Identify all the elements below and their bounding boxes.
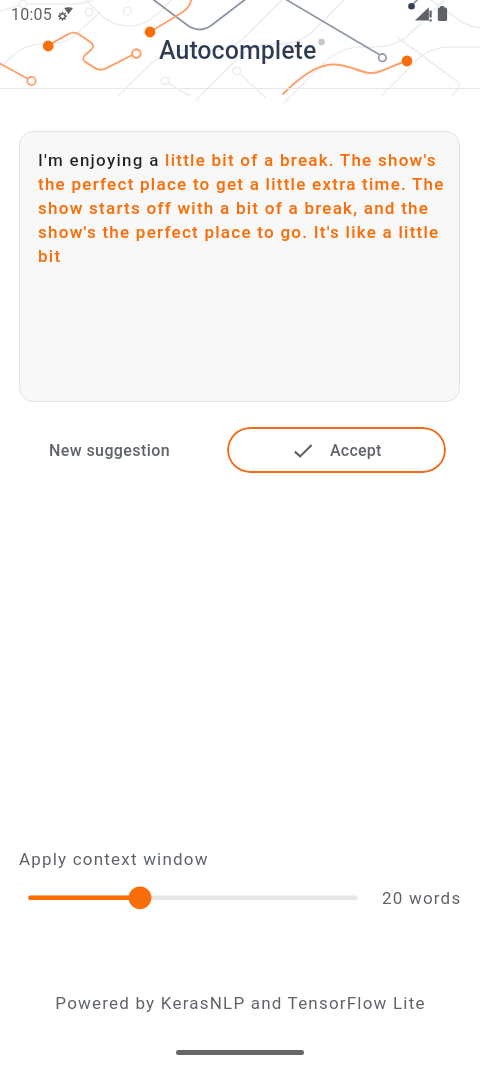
staticText: New suggestion: [49, 441, 171, 460]
staticText: Apply context window: [19, 849, 209, 869]
button[interactable]: Context window size: [14, 883, 368, 913]
staticText: Powered by KerasNLP and TensorFlow Lite: [55, 993, 426, 1013]
staticText: Autocomplete: [159, 36, 317, 65]
staticText: 20 words: [382, 888, 462, 908]
staticText: 10:05: [11, 5, 52, 24]
staticText: I'm enjoying a little bit of a break. Th…: [38, 150, 448, 266]
button[interactable]: Accept: [227, 427, 446, 473]
staticText: Accept: [330, 441, 382, 460]
button[interactable]: New suggestion: [25, 431, 195, 470]
